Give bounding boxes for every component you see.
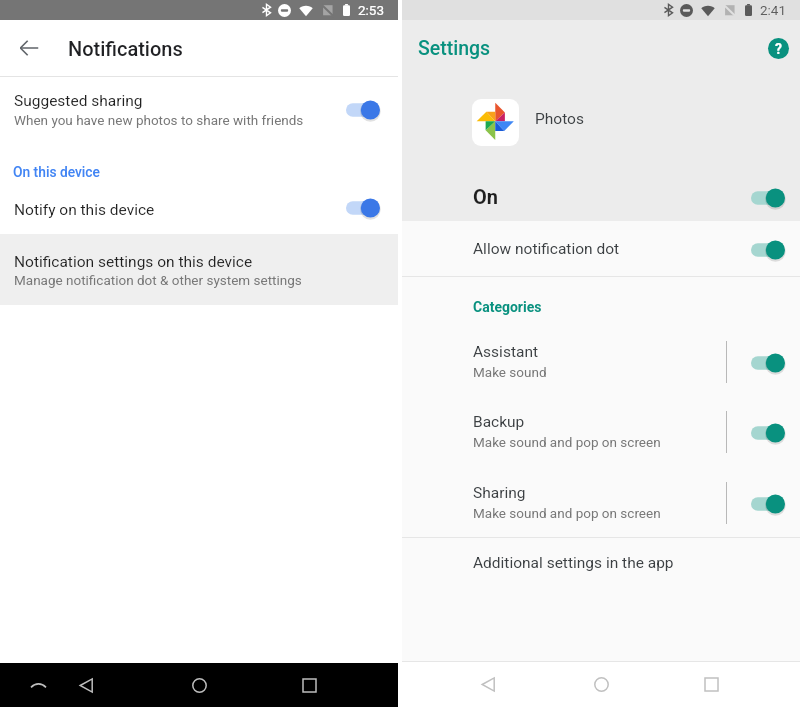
button[interactable]: Additional settings in the app [402,538,800,588]
staticText: Sharing [473,484,526,502]
button[interactable]: Toggle [346,98,380,122]
staticText: When you have new photos to share with f… [14,112,304,128]
staticText: Make sound and pop on screen [473,434,661,450]
staticText: Suggested sharing [14,92,143,110]
button[interactable]: Home [182,663,216,707]
button[interactable]: Sharing [402,475,800,531]
button[interactable]: Recent apps [292,663,326,707]
staticText: Make sound [473,364,547,380]
button[interactable]: Notification settings on this device [0,234,398,305]
staticText: On this device [13,164,100,180]
button[interactable]: Toggle [751,492,785,516]
staticText: Manage notification dot & other system s… [14,272,302,288]
staticText: 2:41 [760,2,787,18]
button[interactable]: Help [765,35,791,61]
staticText: Additional settings in the app [473,554,674,572]
button[interactable]: On [402,172,800,221]
staticText: On [473,185,498,208]
button[interactable]: Toggle [751,421,785,445]
button[interactable]: Recent apps [694,662,728,707]
button[interactable]: Notify on this device [0,188,398,232]
button[interactable]: Suggested sharing [0,77,398,141]
staticText: Notifications [68,37,183,60]
staticText: Make sound and pop on screen [473,505,661,521]
button[interactable]: Assistant [402,334,800,390]
button[interactable]: Toggle [751,186,785,210]
staticText: 2:53 [358,2,385,18]
button[interactable]: Backup [402,404,800,460]
staticText: Allow notification dot [473,240,620,258]
staticText: Assistant [473,343,539,361]
staticText: ? [775,41,782,57]
staticText: Backup [473,413,525,431]
button[interactable]: Toggle [346,196,380,220]
button[interactable]: Allow notification dot [402,221,800,276]
button[interactable]: Back [69,663,103,707]
staticText: Categories [473,299,542,315]
button[interactable]: Hide keyboard [22,663,54,707]
button[interactable]: Back [12,31,46,65]
staticText: Photos [535,110,584,128]
staticText: Settings [418,37,491,60]
button[interactable]: Home [584,662,618,707]
button[interactable]: Toggle [751,238,785,262]
button[interactable]: Toggle [751,351,785,375]
staticText: Notify on this device [14,201,155,219]
staticText: Notification settings on this device [14,253,253,271]
button[interactable]: Back [471,662,505,707]
